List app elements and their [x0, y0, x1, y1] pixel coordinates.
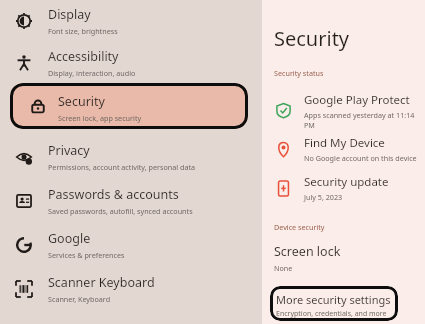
staticText: Screen lock, app security — [58, 113, 142, 123]
other: Find My Device — [262, 131, 304, 167]
staticText: None — [274, 263, 293, 273]
staticText: Find My Device — [304, 135, 385, 151]
other: Scanner Keyboard — [0, 268, 48, 310]
button[interactable]: More security settings — [270, 286, 398, 321]
staticText: Device security — [274, 222, 325, 232]
button[interactable]: Accessibility — [0, 42, 262, 84]
staticText: Google — [48, 230, 91, 247]
staticText: Scanner Keyboard — [48, 274, 155, 291]
staticText: Google Play Protect — [304, 92, 410, 108]
staticText: Security update — [304, 174, 389, 190]
other: Security update — [262, 170, 304, 206]
staticText: Screen lock — [274, 243, 341, 260]
other: Display — [0, 0, 48, 42]
staticText: Accessibility — [48, 48, 119, 65]
staticText: Privacy — [48, 142, 90, 159]
button[interactable]: Security update — [262, 170, 425, 206]
staticText: Services & preferences — [48, 250, 125, 260]
other: Privacy — [0, 136, 48, 178]
staticText: More security settings — [276, 292, 391, 307]
button[interactable]: Google — [0, 224, 262, 266]
staticText: Permissions, account activity, personal … — [48, 162, 196, 172]
button[interactable]: Scanner Keyboard — [0, 268, 262, 310]
staticText: Display — [48, 6, 91, 23]
staticText: Saved passwords, autofill, synced accoun… — [48, 206, 193, 216]
button[interactable]: Display — [0, 0, 262, 42]
button[interactable]: Passwords — [0, 180, 262, 222]
button[interactable]: Privacy — [0, 136, 262, 178]
staticText: July 5, 2023 — [304, 192, 343, 202]
other: Google — [0, 224, 48, 266]
button[interactable]: Google Play Protect — [262, 92, 425, 128]
button[interactable]: Security — [10, 83, 248, 129]
button[interactable]: Find My Device — [262, 131, 425, 167]
staticText: Encryption, credentials, and more — [276, 309, 387, 319]
staticText: Font size, brightness — [48, 26, 118, 36]
other: Google Play Protect — [262, 92, 304, 128]
staticText: No Google account on this device — [304, 153, 417, 163]
other: Accessibility — [0, 42, 48, 84]
other: Passwords — [0, 180, 48, 222]
staticText: Security — [58, 93, 105, 110]
staticText: Apps scanned yesterday at 11:14 PM — [304, 110, 425, 128]
staticText: Scanner, Keyboard — [48, 294, 111, 304]
button[interactable]: Screen lock — [274, 243, 341, 273]
staticText: Security status — [274, 68, 324, 78]
staticText: Security — [274, 25, 350, 52]
staticText: Passwords & accounts — [48, 186, 179, 203]
staticText: Display, interaction, audio — [48, 68, 136, 78]
